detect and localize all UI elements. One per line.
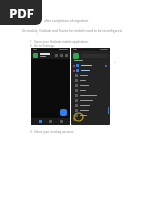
button[interactable]	[73, 63, 108, 68]
staticText: On mobile, Outlook and Teams for mobile …	[22, 29, 123, 33]
staticText: 2. Go to Settings.	[30, 44, 55, 48]
staticText: 3. Select your existing account.	[30, 130, 75, 134]
button[interactable]: Account	[31, 48, 70, 125]
button[interactable]	[73, 108, 108, 113]
button[interactable]	[73, 93, 108, 98]
button[interactable]: More	[73, 118, 76, 121]
button[interactable]: Account	[33, 53, 38, 58]
button[interactable]: Action	[60, 54, 63, 57]
staticText: after completion of migration.	[44, 19, 90, 23]
button[interactable]	[73, 113, 108, 118]
button[interactable]	[73, 98, 108, 103]
button[interactable]	[73, 103, 108, 108]
button[interactable]: Action	[65, 54, 68, 57]
button[interactable]: PDF document	[0, 0, 42, 25]
staticText: 1. Open your Outlook mobile application.	[30, 40, 89, 44]
button[interactable]	[73, 88, 108, 93]
button[interactable]	[73, 73, 108, 78]
button[interactable]	[73, 78, 108, 83]
button[interactable]: Compose	[60, 109, 67, 116]
button[interactable]: Action	[55, 54, 58, 57]
button[interactable]: Profile	[73, 53, 79, 59]
staticText: PDF	[9, 4, 34, 22]
button[interactable]	[73, 83, 108, 88]
button[interactable]: Profile	[71, 48, 110, 125]
button[interactable]	[73, 68, 108, 73]
